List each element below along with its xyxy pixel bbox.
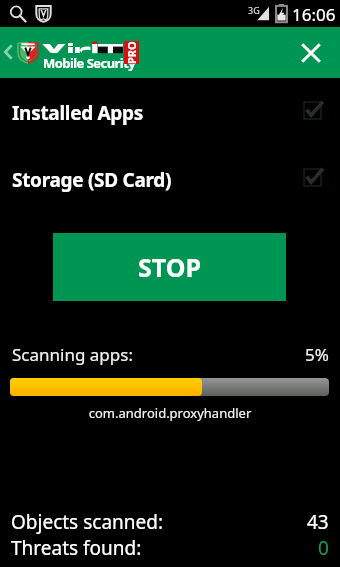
staticText: Installed Apps — [12, 100, 144, 126]
staticText: Objects scanned: — [11, 509, 164, 535]
staticText: Storage (SD Card) — [12, 167, 172, 193]
staticText: 43 — [307, 509, 329, 535]
button[interactable]: Installed Apps — [0, 100, 340, 128]
staticText: Threats found: — [11, 535, 142, 561]
staticText: Mobile Security — [43, 54, 136, 72]
button[interactable]: Close — [286, 27, 340, 78]
button[interactable]: STOP — [53, 233, 286, 301]
staticText: 0 — [318, 535, 329, 561]
staticText: STOP — [138, 250, 202, 284]
staticText: Scanning apps: — [12, 343, 133, 366]
button[interactable]: Storage (SD Card) — [0, 167, 340, 195]
staticText: com.android.proxyhandler — [0, 404, 340, 422]
staticText: PRO — [124, 41, 139, 64]
button[interactable]: Back — [0, 27, 18, 78]
staticText: 16:06 — [292, 3, 336, 26]
staticText: 3G — [248, 4, 260, 16]
staticText: 5% — [305, 343, 329, 366]
